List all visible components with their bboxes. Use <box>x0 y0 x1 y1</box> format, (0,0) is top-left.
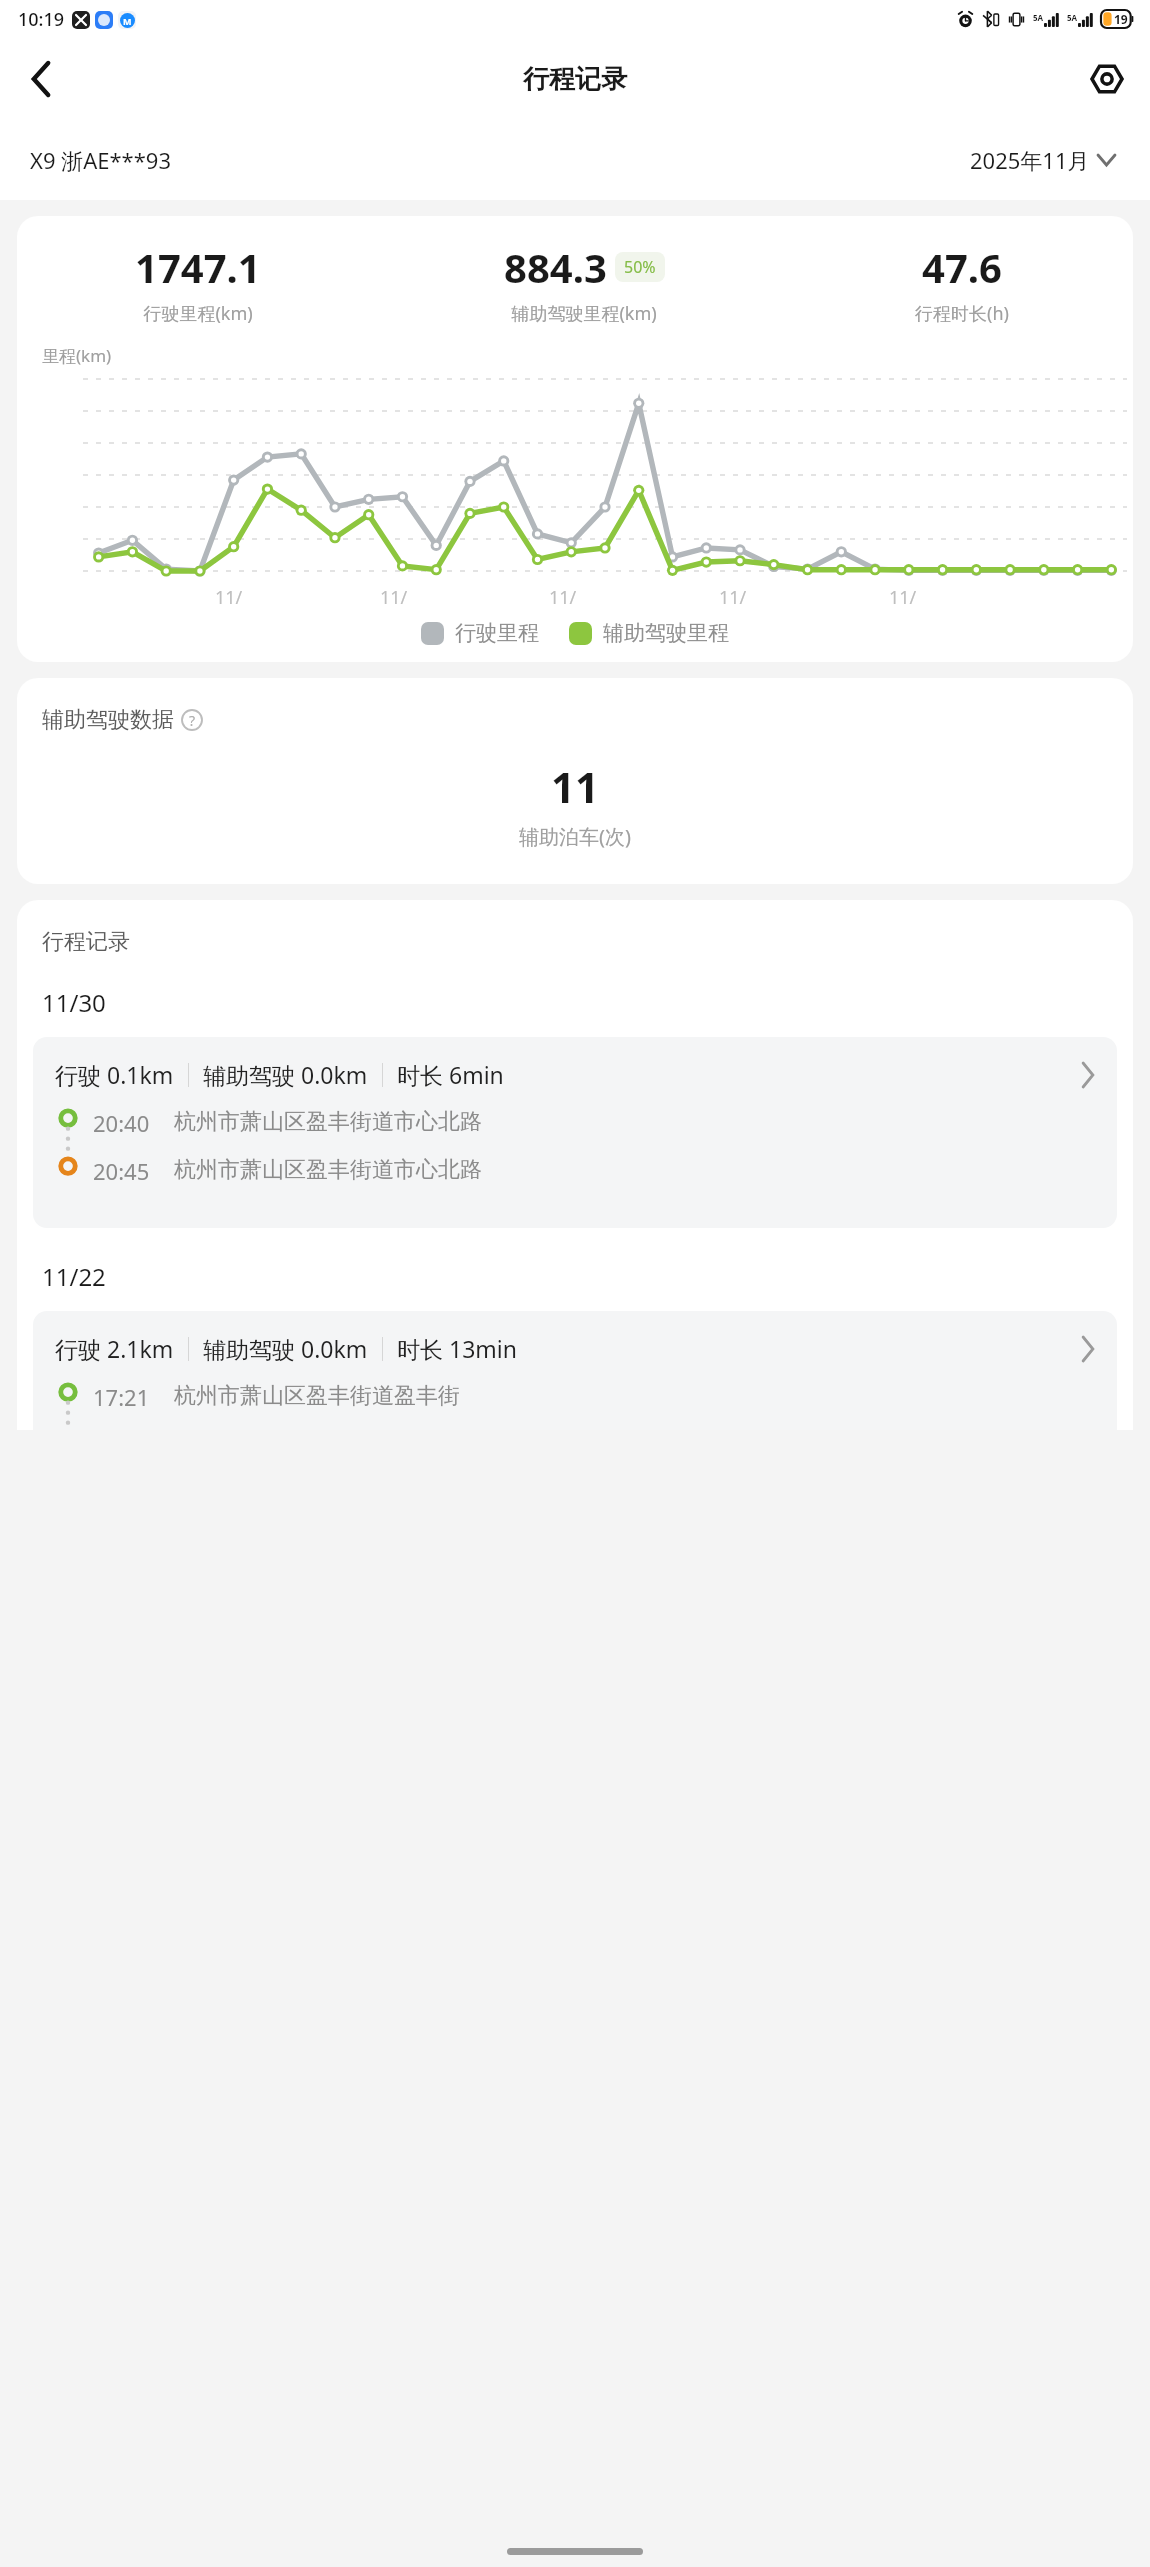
staticText: 杭州市萧山区盈丰街道市心北路 <box>174 1156 482 1184</box>
staticText: 杭州市萧山区盈丰街道市心北路 <box>174 1108 482 1136</box>
staticText: 11/20 <box>719 585 753 610</box>
staticText: 5A <box>1067 12 1078 23</box>
staticText: 辅助驾驶数据 <box>42 706 174 734</box>
staticText: 11/30 <box>42 986 106 1019</box>
staticText: 20:40 <box>93 1108 150 1138</box>
button[interactable]: 返回 <box>10 48 72 110</box>
staticText: 884.3 <box>504 240 607 294</box>
staticText: 5A <box>1033 12 1044 23</box>
staticText: 11/05 <box>215 585 248 610</box>
staticText: 10:19 <box>18 7 65 32</box>
button[interactable]: 行驶 0.1km <box>33 1037 1117 1228</box>
staticText: 辅助驾驶 0.0km <box>203 1333 368 1364</box>
staticText: 辅助驾驶里程 <box>603 620 729 646</box>
staticText: 辅助泊车(次) <box>519 823 631 850</box>
staticText: 行驶 0.1km <box>55 1059 174 1090</box>
staticText: X9 浙AE***93 <box>30 145 172 175</box>
staticText: 行程记录 <box>523 63 627 96</box>
staticText: M <box>123 15 132 27</box>
staticText: 行驶里程(km) <box>143 301 253 326</box>
staticText: 行驶里程 <box>455 620 539 646</box>
staticText: 行程时长(h) <box>915 301 1009 326</box>
staticText: 11/15 <box>549 585 583 610</box>
staticText: 里程(km) <box>42 344 112 367</box>
staticText: 19 <box>1114 11 1128 27</box>
staticText: 2025年11月 <box>970 145 1090 175</box>
button[interactable]: 行驶 2.1km <box>33 1311 1117 1430</box>
staticText: 11 <box>551 758 600 815</box>
staticText: 11/10 <box>380 585 413 610</box>
staticText: 行驶 2.1km <box>55 1333 174 1364</box>
staticText: 1747.1 <box>135 240 261 294</box>
staticText: 行程记录 <box>42 928 130 956</box>
staticText: 47.6 <box>922 240 1002 294</box>
staticText: 时长 6min <box>397 1059 504 1090</box>
staticText: 11/22 <box>42 1260 106 1293</box>
staticText: 50% <box>624 256 656 278</box>
staticText: ? <box>189 711 196 730</box>
staticText: 辅助驾驶 0.0km <box>203 1059 368 1090</box>
staticText: 时长 13min <box>397 1333 517 1364</box>
staticText: 17:21 <box>93 1382 150 1412</box>
button[interactable]: 辅助驾驶数据 <box>42 706 203 734</box>
staticText: 杭州市萧山区盈丰街道盈丰街 <box>174 1382 460 1410</box>
staticText: 11/25 <box>889 585 923 610</box>
staticText: 20:45 <box>93 1156 150 1186</box>
button[interactable]: 2025年11月 <box>965 140 1120 180</box>
staticText: 辅助驾驶里程(km) <box>511 301 657 326</box>
button[interactable]: 车辆设置 <box>1076 48 1138 110</box>
other: 说明 <box>181 709 203 731</box>
